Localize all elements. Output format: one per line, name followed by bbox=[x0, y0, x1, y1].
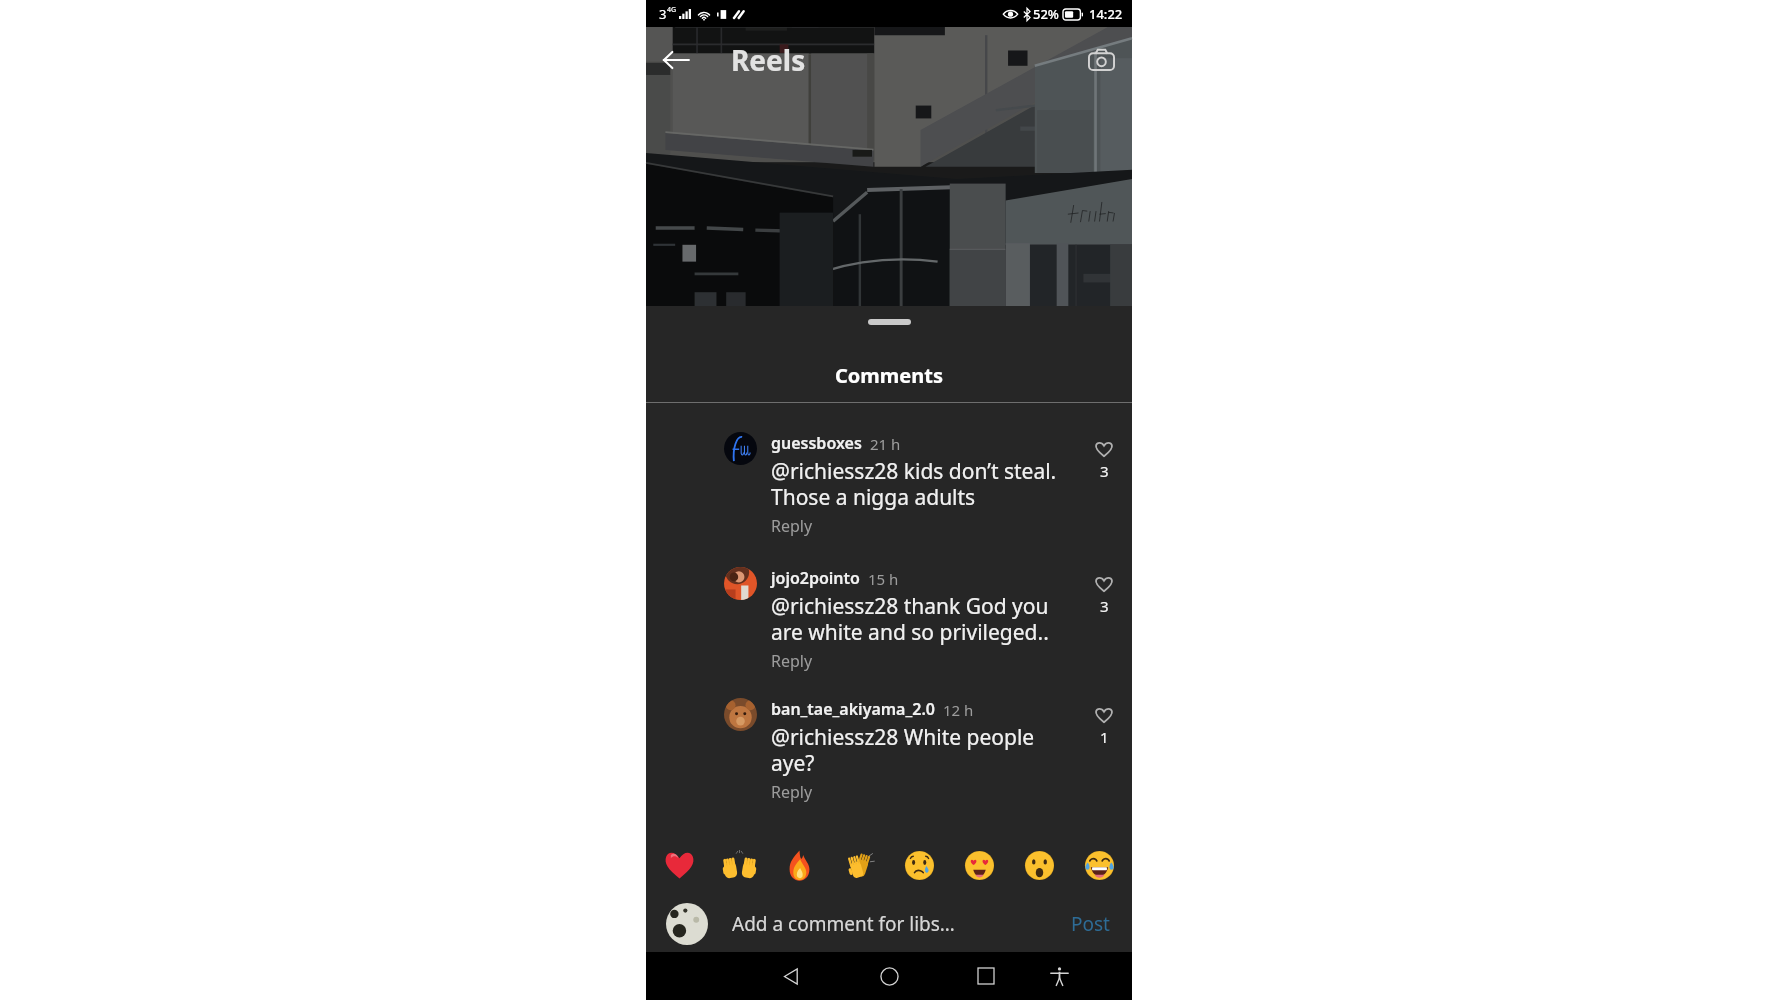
staticText: 1 bbox=[1100, 727, 1109, 747]
button[interactable]: Reply bbox=[771, 650, 813, 672]
staticText: @richiessz28 thank God you are white and… bbox=[771, 592, 1049, 646]
button[interactable]: Clap reaction bbox=[842, 848, 876, 882]
staticText: 4G bbox=[667, 5, 677, 15]
button[interactable]: Reply bbox=[771, 781, 813, 803]
button[interactable]: Love reaction bbox=[962, 848, 996, 882]
staticText: 52% bbox=[1033, 5, 1059, 23]
button[interactable]: Raised hands reaction bbox=[722, 848, 756, 882]
button[interactable]: Reply bbox=[771, 515, 813, 537]
staticText: Reply bbox=[771, 515, 813, 537]
button[interactable]: Back bbox=[656, 40, 696, 80]
staticText: Comments bbox=[835, 362, 943, 389]
staticText: @richiessz28 kids don’t steal. Those a n… bbox=[771, 457, 1057, 511]
staticText: 12 h bbox=[943, 700, 974, 720]
staticText: Add a comment for libs… bbox=[732, 911, 955, 937]
button[interactable]: jojo2pointo bbox=[646, 537, 1132, 672]
button[interactable]: Fire reaction bbox=[782, 848, 816, 882]
staticText: 21 h bbox=[870, 434, 901, 454]
staticText: 3 bbox=[659, 5, 667, 23]
staticText: Reels bbox=[731, 41, 806, 79]
staticText: Reply bbox=[771, 781, 813, 803]
staticText: Reply bbox=[771, 650, 813, 672]
staticText: 14:22 bbox=[1089, 5, 1123, 23]
staticText: @richiessz28 White people aye? bbox=[771, 723, 1035, 777]
button[interactable]: Accessibility bbox=[1038, 955, 1080, 997]
button[interactable]: guessboxes bbox=[646, 403, 1132, 537]
button[interactable]: Like bbox=[1088, 698, 1120, 747]
button[interactable]: Add a comment for libs… bbox=[646, 896, 1063, 952]
button[interactable]: Sad reaction bbox=[902, 848, 936, 882]
button[interactable]: Like bbox=[1088, 567, 1120, 616]
button[interactable]: ban_tae_akiyama_2.0 bbox=[646, 672, 1132, 803]
button[interactable]: Laughing reaction bbox=[1082, 848, 1116, 882]
staticText: guessboxes bbox=[771, 432, 862, 454]
button[interactable]: Post bbox=[1063, 896, 1132, 952]
button[interactable]: Back bbox=[770, 955, 812, 997]
staticText: jojo2pointo bbox=[771, 567, 860, 589]
button[interactable]: Recents bbox=[965, 955, 1007, 997]
staticText: ban_tae_akiyama_2.0 bbox=[771, 698, 935, 720]
button[interactable]: Camera bbox=[1083, 42, 1119, 78]
button[interactable]: Heart reaction bbox=[662, 848, 696, 882]
button[interactable]: Surprised reaction bbox=[1022, 848, 1056, 882]
staticText: 3 bbox=[1100, 461, 1109, 481]
staticText: Post bbox=[1071, 911, 1110, 937]
staticText: 3 bbox=[1100, 596, 1109, 616]
staticText: 15 h bbox=[868, 569, 899, 589]
button[interactable]: Like bbox=[1088, 432, 1120, 481]
button[interactable]: Home bbox=[868, 955, 910, 997]
